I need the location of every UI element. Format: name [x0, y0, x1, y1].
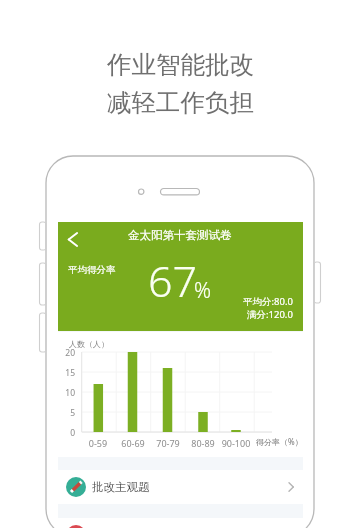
staticText: 70-79 [152, 437, 184, 449]
staticText: 5 [58, 407, 75, 419]
button[interactable]: 批改主观题 [58, 470, 303, 504]
staticText: 得分率（%） [256, 436, 303, 447]
staticText: 15 [58, 367, 75, 379]
staticText: 0 [58, 427, 75, 439]
staticText: 批改主观题 [92, 480, 150, 494]
staticText: 减轻工作负担 [107, 87, 254, 118]
staticText: 90-100 [220, 437, 252, 449]
staticText: 人数（人） [69, 339, 109, 349]
staticText: 67 [148, 251, 198, 310]
staticText: 平均得分率 [68, 264, 116, 276]
button[interactable]: 查看客观题 [58, 518, 303, 528]
staticText: % [194, 276, 212, 305]
staticText: 80-89 [187, 437, 219, 449]
staticText: 满分:120.0 [247, 308, 293, 321]
staticText: 0-59 [82, 437, 114, 449]
staticText: 60-69 [117, 437, 149, 449]
button[interactable]: Back [62, 226, 86, 250]
staticText: 10 [58, 387, 75, 399]
staticText: 金太阳第十套测试卷 [128, 228, 232, 242]
staticText: 平均分:80.0 [243, 295, 293, 308]
staticText: 20 [58, 347, 75, 359]
staticText: 作业智能批改 [107, 49, 254, 80]
